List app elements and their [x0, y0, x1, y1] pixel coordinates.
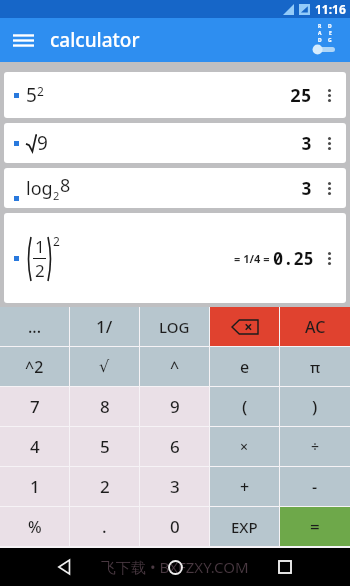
- button[interactable]: π: [280, 347, 350, 386]
- staticText: EXP: [231, 517, 258, 537]
- button[interactable]: ): [280, 387, 350, 426]
- button[interactable]: AC: [280, 307, 350, 346]
- staticText: +: [240, 476, 250, 498]
- button[interactable]: ...: [0, 307, 69, 346]
- staticText: 2: [53, 233, 60, 249]
- staticText: D: [328, 23, 332, 30]
- button[interactable]: Back: [52, 554, 78, 580]
- button[interactable]: e: [210, 347, 279, 386]
- button[interactable]: 5: [70, 427, 139, 466]
- staticText: log: [26, 176, 53, 201]
- button[interactable]: 1: [0, 467, 69, 506]
- staticText: 8: [60, 173, 71, 198]
- staticText: = 1/4 =: [234, 251, 273, 266]
- staticText: %: [28, 516, 42, 538]
- button[interactable]: 8: [70, 387, 139, 426]
- button[interactable]: Recent apps: [272, 554, 298, 580]
- staticText: 5: [100, 435, 110, 458]
- staticText: 2: [37, 83, 44, 99]
- staticText: e: [240, 356, 250, 378]
- staticText: ): [312, 395, 318, 418]
- staticText: 7: [30, 395, 40, 418]
- staticText: 3: [170, 475, 180, 498]
- staticText: 0.25: [273, 247, 314, 270]
- staticText: LOG: [159, 317, 190, 337]
- button[interactable]: +: [210, 467, 279, 506]
- button[interactable]: (: [210, 387, 279, 426]
- button[interactable]: .: [70, 507, 139, 546]
- staticText: 3: [301, 176, 312, 201]
- staticText: .: [102, 515, 107, 538]
- button[interactable]: √: [70, 347, 139, 386]
- button[interactable]: 4: [0, 427, 69, 466]
- button[interactable]: Toggle radians or degrees: [304, 20, 346, 60]
- staticText: 6: [170, 435, 180, 458]
- button[interactable]: =: [280, 507, 350, 546]
- staticText: ...: [28, 316, 42, 338]
- button[interactable]: ^2: [0, 347, 69, 386]
- staticText: calculator: [50, 27, 140, 53]
- staticText: 25: [290, 83, 312, 108]
- staticText: R: [318, 23, 322, 30]
- staticText: =: [310, 515, 320, 538]
- button[interactable]: 0: [140, 507, 209, 546]
- button[interactable]: Backspace: [210, 307, 279, 346]
- button[interactable]: 1/: [70, 307, 139, 346]
- button[interactable]: 9: [4, 123, 346, 163]
- staticText: 1: [30, 475, 40, 498]
- staticText: 3: [301, 131, 312, 156]
- button[interactable]: Home: [162, 554, 188, 580]
- staticText: ^2: [25, 356, 44, 378]
- button[interactable]: LOG: [140, 307, 209, 346]
- staticText: -: [312, 476, 318, 498]
- staticText: 11:16: [315, 1, 346, 17]
- staticText: 9: [170, 395, 180, 418]
- staticText: 9: [37, 130, 48, 156]
- staticText: 2: [53, 188, 60, 203]
- button[interactable]: ÷: [280, 427, 350, 466]
- staticText: ×: [240, 437, 249, 456]
- button[interactable]: ^: [140, 347, 209, 386]
- staticText: 2: [35, 259, 45, 282]
- button[interactable]: More options: [319, 85, 339, 105]
- staticText: AC: [305, 316, 326, 338]
- staticText: A: [318, 30, 322, 37]
- button[interactable]: 6: [140, 427, 209, 466]
- button[interactable]: 3: [140, 467, 209, 506]
- staticText: π: [310, 357, 321, 377]
- button[interactable]: 7: [0, 387, 69, 426]
- button[interactable]: 5: [4, 72, 346, 118]
- staticText: D: [318, 37, 322, 44]
- button[interactable]: More options: [319, 248, 339, 268]
- staticText: (: [242, 395, 248, 418]
- button[interactable]: 2: [70, 467, 139, 506]
- button[interactable]: Open navigation menu: [6, 23, 40, 57]
- staticText: 4: [30, 435, 40, 458]
- button[interactable]: EXP: [210, 507, 279, 546]
- staticText: 2: [100, 475, 110, 498]
- staticText: ^: [170, 356, 180, 378]
- staticText: √: [99, 357, 110, 376]
- staticText: ÷: [311, 437, 320, 456]
- button[interactable]: ×: [210, 427, 279, 466]
- button[interactable]: 9: [140, 387, 209, 426]
- staticText: 5: [26, 82, 37, 108]
- button[interactable]: -: [280, 467, 350, 506]
- staticText: 1: [35, 235, 45, 258]
- staticText: 飞下载 • BXFZXY.COM: [101, 557, 249, 577]
- button[interactable]: More options: [319, 178, 339, 198]
- staticText: 1/: [96, 315, 113, 338]
- button[interactable]: log: [4, 168, 346, 208]
- button[interactable]: 1: [4, 213, 346, 303]
- button[interactable]: More options: [319, 133, 339, 153]
- staticText: E: [329, 30, 332, 37]
- button[interactable]: %: [0, 507, 69, 546]
- staticText: 8: [100, 395, 110, 418]
- staticText: 0: [170, 515, 180, 538]
- staticText: G: [328, 37, 332, 44]
